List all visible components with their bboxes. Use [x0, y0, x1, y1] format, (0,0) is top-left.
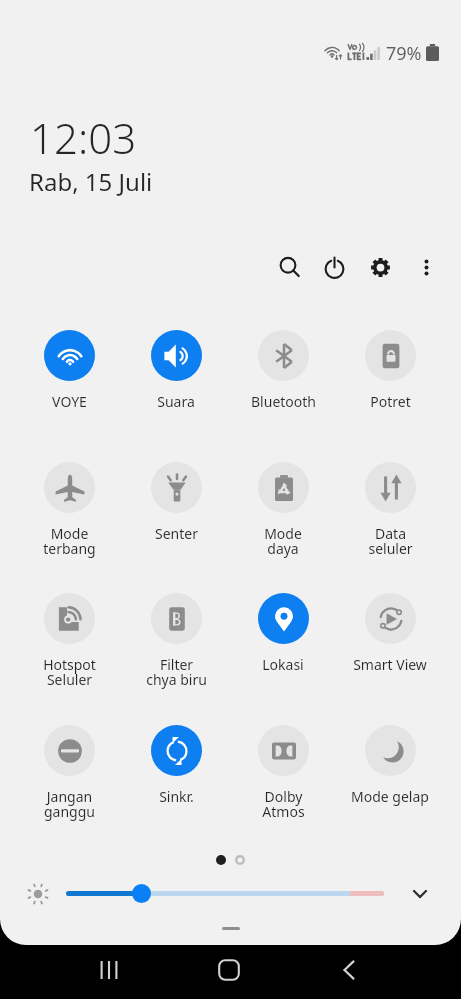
button[interactable]: Power off — [313, 246, 355, 288]
button[interactable]: Settings — [359, 246, 401, 288]
button[interactable]: Data seluler — [337, 462, 443, 558]
button[interactable]: Smart View — [337, 593, 443, 674]
staticText: Bluetooth — [251, 392, 316, 411]
staticText: Mode daya — [264, 524, 302, 558]
staticText: Sinkr. — [159, 787, 194, 806]
button[interactable]: More options — [405, 246, 447, 288]
button[interactable]: Lokasi — [230, 593, 336, 674]
staticText: Lokasi — [262, 655, 304, 674]
staticText: Hotspot Seluler — [43, 655, 96, 689]
button[interactable]: Hotspot Seluler — [16, 593, 122, 689]
staticText: Smart View — [353, 655, 427, 674]
button[interactable]: Mode terbang — [16, 462, 122, 558]
staticText: Data seluler — [368, 524, 413, 558]
button[interactable]: Senter — [123, 462, 229, 543]
button[interactable]: Search — [268, 246, 310, 288]
button[interactable]: VOYE — [16, 330, 122, 411]
staticText: Senter — [155, 524, 198, 543]
button[interactable]: Mode gelap — [337, 725, 443, 806]
button[interactable]: Brightness — [132, 884, 151, 903]
button[interactable]: Expand quick settings — [400, 874, 440, 914]
staticText: Dolby Atmos — [262, 787, 305, 821]
button[interactable]: Jangan ganggu — [16, 725, 122, 821]
button[interactable]: Home — [206, 947, 251, 992]
button[interactable]: Bluetooth — [230, 330, 336, 411]
button[interactable]: Recents — [86, 947, 131, 992]
staticText: 12:03 — [30, 109, 137, 166]
button[interactable]: Back — [326, 947, 371, 992]
staticText: Rab, 15 Juli — [29, 165, 153, 198]
button[interactable]: Sinkr. — [123, 725, 229, 806]
button[interactable]: Dolby Atmos — [230, 725, 336, 821]
staticText: VOYE — [52, 392, 87, 411]
button[interactable]: Mode daya — [230, 462, 336, 558]
staticText: Suara — [157, 392, 195, 411]
staticText: 79% — [386, 41, 422, 66]
button[interactable]: Potret — [337, 330, 443, 411]
staticText: Filter chya biru — [146, 655, 207, 689]
staticText: Jangan ganggu — [44, 787, 95, 821]
staticText: Potret — [370, 392, 411, 411]
button[interactable]: Filter chya biru — [123, 593, 229, 689]
staticText: Mode terbang — [43, 524, 96, 558]
button[interactable]: Suara — [123, 330, 229, 411]
staticText: Mode gelap — [351, 787, 429, 806]
